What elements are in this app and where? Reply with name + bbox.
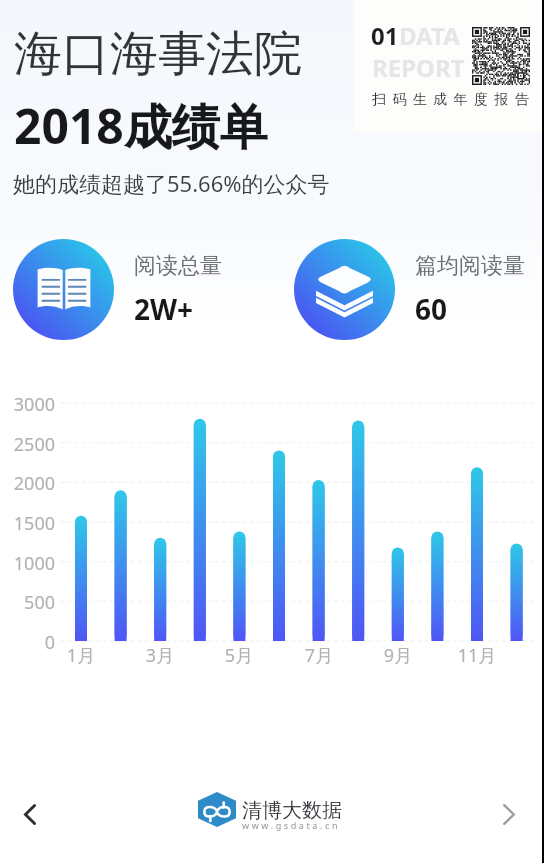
staticText: 2000	[0, 471, 55, 496]
button[interactable]: 清博大数据	[194, 786, 350, 834]
staticText: 11月	[452, 643, 502, 668]
staticText: 2500	[0, 432, 55, 457]
staticText: 5月	[214, 643, 264, 668]
staticText: 7月	[294, 643, 344, 668]
staticText: 2W+	[134, 290, 194, 328]
staticText: 500	[0, 590, 55, 615]
staticText: 9月	[373, 643, 423, 668]
staticText: 阅读总量	[134, 252, 222, 280]
button[interactable]: Next page	[486, 792, 531, 837]
staticText: 1000	[0, 551, 55, 576]
staticText: 1月	[56, 643, 106, 668]
staticText: DATA	[399, 19, 460, 52]
staticText: www.gsdata.cn	[242, 819, 341, 831]
staticText: 01	[371, 19, 399, 52]
staticText: 海口海事法院	[14, 24, 302, 84]
staticText: REPORT	[372, 51, 465, 84]
staticText: 3000	[0, 392, 55, 417]
button[interactable]: 阅读总量	[13, 239, 222, 340]
button[interactable]: 篇均阅读量	[294, 239, 525, 340]
button[interactable]: Previous page	[7, 792, 52, 837]
staticText: 2018成绩单	[14, 93, 268, 159]
staticText: 清博大数据	[242, 798, 342, 823]
staticText: 60	[415, 290, 448, 328]
button[interactable]: 01	[353, 0, 542, 132]
staticText: 篇均阅读量	[415, 252, 525, 280]
staticText: 1500	[0, 511, 55, 536]
staticText: 她的成绩超越了55.66%的公众号	[13, 168, 330, 198]
staticText: 0	[0, 630, 55, 655]
staticText: 扫码生成年度报告	[372, 91, 536, 109]
staticText: 3月	[135, 643, 185, 668]
